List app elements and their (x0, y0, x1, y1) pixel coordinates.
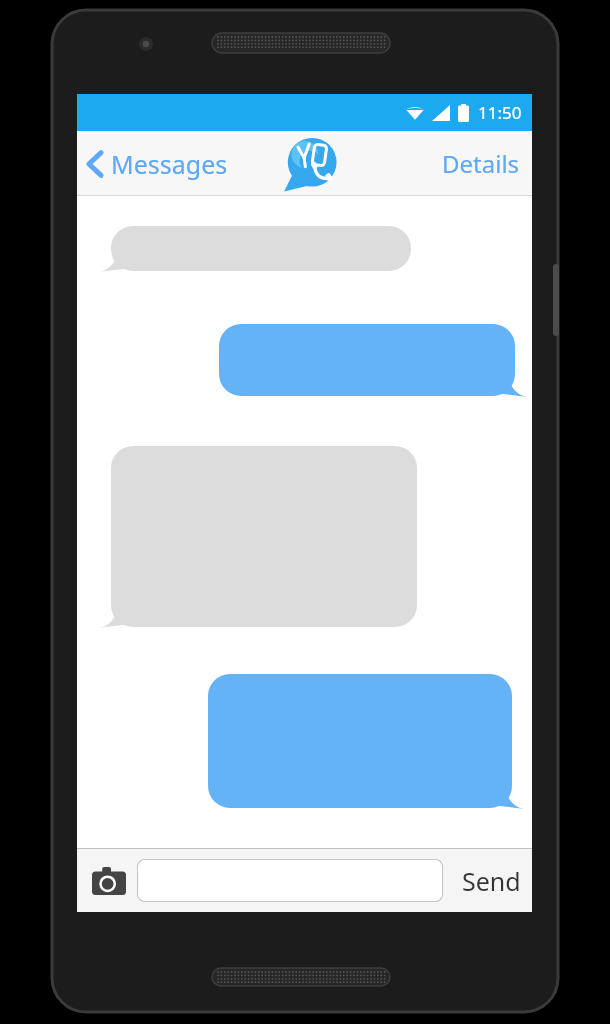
button[interactable]: Take photo (86, 858, 132, 904)
button[interactable]: Messages (77, 131, 238, 196)
button[interactable]: Received message (97, 226, 411, 271)
button[interactable]: Details (430, 131, 532, 196)
button[interactable]: Sent message (208, 674, 526, 808)
button[interactable]: Contact avatar (282, 135, 340, 193)
button[interactable]: Message input (137, 859, 443, 902)
staticText: Send (462, 864, 521, 898)
staticText: Messages (111, 147, 228, 181)
staticText: 11:50 (478, 101, 522, 124)
button[interactable]: Received message (97, 446, 417, 627)
button[interactable]: Send (451, 849, 532, 912)
staticText: Details (442, 147, 520, 180)
button[interactable]: Sent message (219, 324, 529, 396)
